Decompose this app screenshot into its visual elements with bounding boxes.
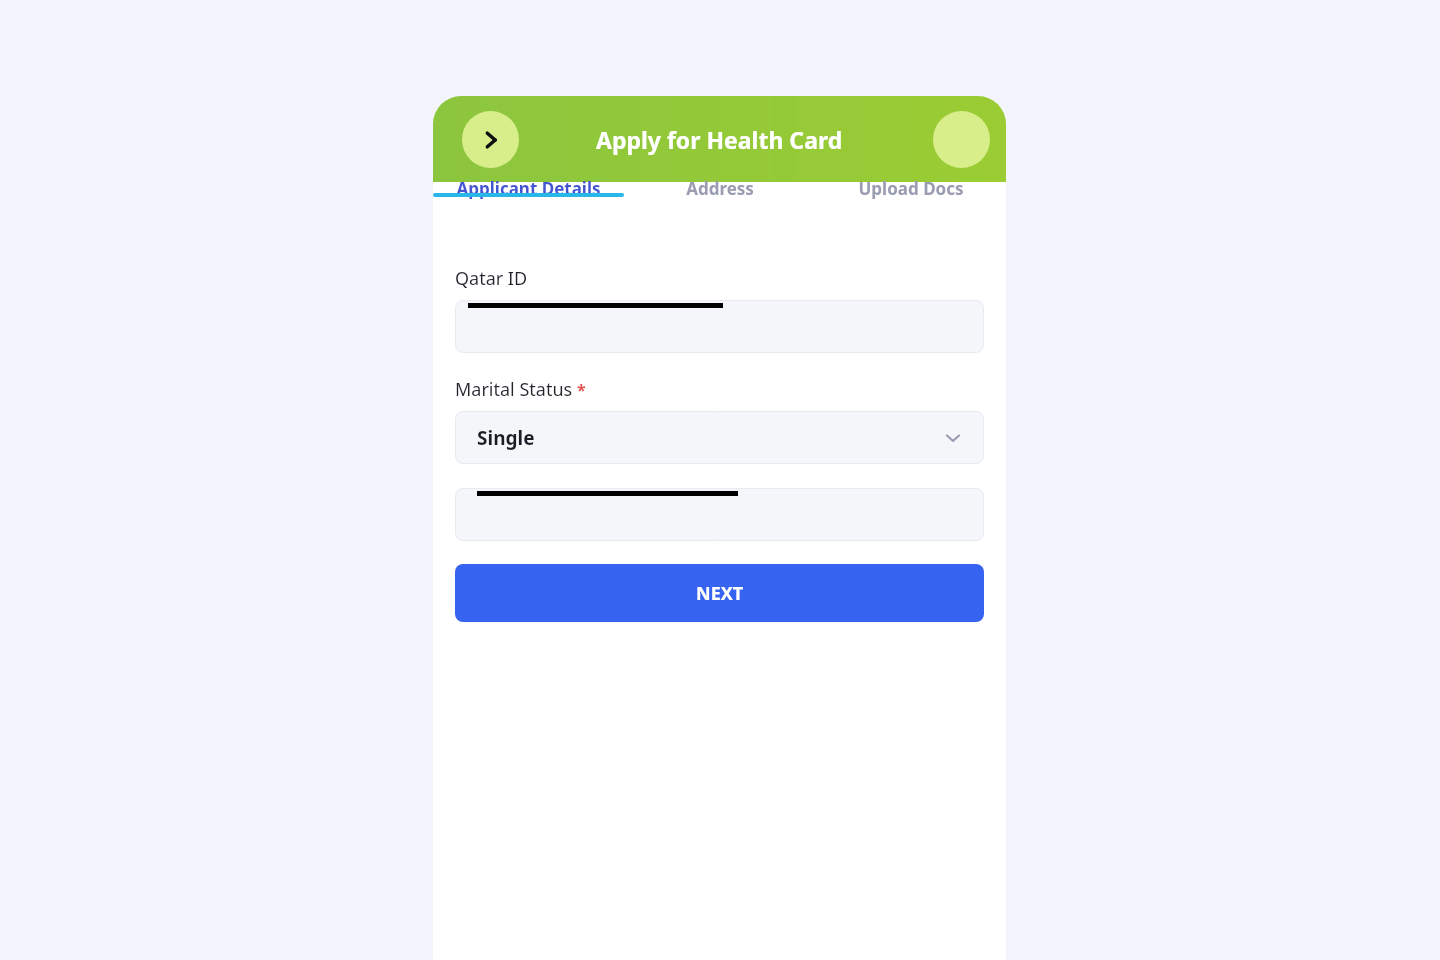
- staticText: Qatar ID: [455, 266, 528, 291]
- button[interactable]: Back: [462, 111, 519, 168]
- staticText: Single: [477, 425, 535, 451]
- staticText: Upload Docs: [858, 177, 964, 200]
- button[interactable]: Profile: [933, 111, 990, 168]
- staticText: Address: [686, 177, 754, 200]
- button[interactable]: Applicant Details: [433, 182, 624, 205]
- button[interactable]: NEXT: [455, 564, 984, 622]
- button[interactable]: Upload Docs: [815, 182, 1006, 205]
- staticText: NEXT: [696, 581, 744, 606]
- staticText: Marital Status: [455, 377, 573, 402]
- button[interactable]: [455, 488, 984, 541]
- staticText: *: [577, 379, 586, 401]
- button[interactable]: [455, 300, 984, 353]
- button[interactable]: Address: [624, 182, 815, 205]
- staticText: Apply for Health Card: [596, 124, 843, 155]
- button[interactable]: Single: [455, 411, 984, 464]
- staticText: Applicant Details: [456, 177, 601, 200]
